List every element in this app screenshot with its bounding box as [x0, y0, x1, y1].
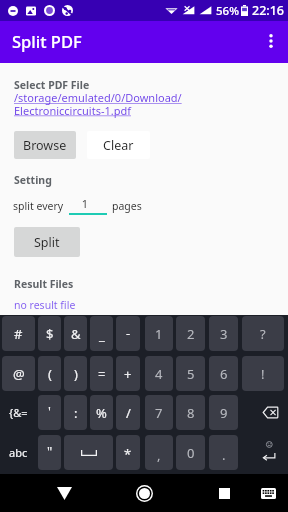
staticText: /: [126, 404, 131, 422]
button[interactable]: 1: [69, 196, 107, 215]
button[interactable]: 0: [176, 435, 205, 470]
button[interactable]: ": [38, 435, 61, 470]
button[interactable]: 9: [209, 395, 238, 430]
button[interactable]: #: [2, 316, 35, 351]
staticText: split every: [13, 199, 64, 213]
button[interactable]: ): [64, 356, 87, 391]
staticText: Setting: [14, 173, 52, 187]
button[interactable]: Home: [129, 478, 159, 508]
staticText: 6: [220, 365, 228, 383]
staticText: 7: [155, 404, 163, 422]
button[interactable]: abc: [2, 435, 35, 470]
button[interactable]: {&=: [2, 395, 35, 430]
staticText: 2: [187, 325, 195, 343]
button[interactable]: *: [116, 435, 140, 470]
button[interactable]: =: [90, 356, 113, 391]
staticText: Split: [34, 234, 60, 251]
staticText: abc: [9, 445, 28, 460]
staticText: @: [13, 365, 25, 383]
staticText: $: [46, 325, 54, 343]
staticText: &: [71, 325, 81, 343]
staticText: 56%: [216, 3, 239, 19]
staticText: ): [74, 365, 78, 383]
staticText: 4: [155, 365, 163, 383]
button[interactable]: Switch keyboard: [254, 474, 282, 512]
staticText: 22:16: [252, 2, 285, 19]
button[interactable]: .: [209, 435, 238, 470]
staticText: Split PDF: [12, 30, 82, 52]
button[interactable]: Browse: [14, 131, 76, 159]
button[interactable]: &: [64, 316, 87, 351]
staticText: !: [261, 365, 265, 383]
button[interactable]: 8: [176, 395, 205, 430]
staticText: 5: [187, 365, 195, 383]
button[interactable]: _: [90, 316, 113, 351]
button[interactable]: ': [38, 395, 61, 430]
button[interactable]: 1: [145, 316, 173, 351]
button[interactable]: 7: [145, 395, 173, 430]
button[interactable]: %: [90, 395, 113, 430]
button[interactable]: Space: [64, 435, 113, 470]
staticText: 0: [187, 444, 195, 462]
staticText: Select PDF File: [14, 78, 90, 92]
button[interactable]: Enter: [242, 435, 284, 470]
button[interactable]: 5: [176, 356, 205, 391]
button[interactable]: -: [116, 316, 140, 351]
staticText: *: [124, 445, 132, 463]
staticText: Result Files: [14, 277, 74, 291]
staticText: %: [96, 404, 107, 422]
button[interactable]: @: [2, 356, 35, 391]
button[interactable]: Back: [50, 474, 78, 512]
button[interactable]: 3: [209, 316, 238, 351]
staticText: _: [99, 326, 105, 344]
button[interactable]: !: [242, 356, 284, 391]
button[interactable]: ,: [145, 435, 173, 470]
staticText: 8: [187, 404, 195, 422]
button[interactable]: /storage/emulated/0/Download/ Electronic…: [14, 90, 182, 118]
staticText: +: [124, 365, 132, 383]
button[interactable]: More options: [252, 21, 288, 63]
button[interactable]: :: [64, 395, 87, 430]
staticText: /storage/emulated/0/Download/ Electronic…: [14, 90, 182, 118]
button[interactable]: (: [38, 356, 61, 391]
staticText: ": [47, 442, 53, 460]
button[interactable]: ?: [242, 316, 284, 351]
staticText: :: [74, 404, 78, 422]
staticText: no result file: [14, 298, 76, 312]
staticText: -: [126, 324, 131, 342]
button[interactable]: Recents: [210, 474, 238, 512]
button[interactable]: /: [116, 395, 140, 430]
staticText: Browse: [23, 137, 67, 154]
button[interactable]: $: [38, 316, 61, 351]
staticText: .: [222, 446, 226, 464]
staticText: 1: [66, 196, 104, 211]
button[interactable]: 2: [176, 316, 205, 351]
staticText: pages: [112, 199, 142, 213]
staticText: {&=: [9, 405, 28, 420]
staticText: 1: [155, 325, 163, 343]
staticText: 9: [220, 404, 228, 422]
staticText: ': [48, 402, 51, 420]
staticText: 3: [220, 325, 228, 343]
button[interactable]: 4: [145, 356, 173, 391]
staticText: ?: [260, 325, 266, 343]
staticText: Clear: [103, 137, 134, 154]
staticText: =: [98, 365, 106, 383]
button[interactable]: Clear: [87, 131, 150, 159]
button[interactable]: Backspace: [242, 395, 284, 430]
staticText: (: [48, 365, 52, 383]
button[interactable]: 6: [209, 356, 238, 391]
button[interactable]: Split: [14, 227, 80, 257]
staticText: #: [14, 325, 23, 343]
button[interactable]: +: [116, 356, 140, 391]
staticText: ,: [157, 446, 161, 464]
